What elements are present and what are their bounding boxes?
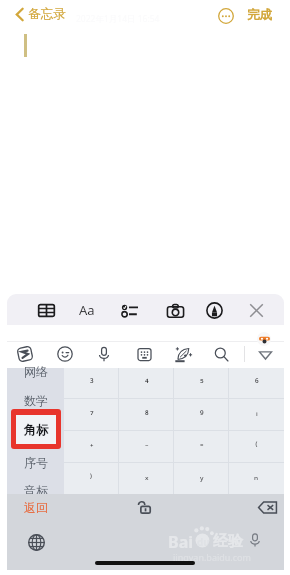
button[interactable]: Camera <box>162 298 188 322</box>
button[interactable]: Switch language <box>24 530 48 554</box>
button[interactable]: 备忘录 <box>12 3 69 25</box>
staticText: ⁴ <box>145 376 149 390</box>
button[interactable]: Backspace <box>255 495 279 519</box>
staticText: 音标 <box>24 483 48 498</box>
button[interactable]: Handwriting <box>171 342 195 366</box>
button[interactable]: 序号 <box>10 450 61 474</box>
button[interactable]: 完成 <box>244 4 275 26</box>
staticText: ⁻ <box>145 440 149 454</box>
button[interactable]: ⁶ <box>229 368 284 398</box>
button[interactable]: Keyboard layout <box>132 342 156 366</box>
staticText: 完成 <box>247 7 272 23</box>
staticText: ³ <box>90 376 94 390</box>
staticText: ⁾ <box>90 472 93 486</box>
staticText: Aa <box>79 301 95 319</box>
button[interactable]: Checklist <box>116 298 142 322</box>
staticText: 经验 <box>213 532 243 551</box>
button[interactable]: 网络 <box>10 359 61 383</box>
button[interactable]: 音标 <box>10 478 61 502</box>
staticText: ⁵ <box>200 376 204 390</box>
button[interactable]: ⁵ <box>174 368 229 398</box>
staticText: 数学 <box>24 393 48 408</box>
button[interactable]: ³ <box>64 368 119 398</box>
button[interactable]: User avatar <box>257 332 271 346</box>
button[interactable]: ʸ <box>174 463 229 494</box>
button[interactable]: ⁽ <box>229 431 284 462</box>
button[interactable]: ⁸ <box>119 399 174 430</box>
staticText: 序号 <box>24 455 48 470</box>
button[interactable]: ⁹ <box>174 399 229 430</box>
button[interactable]: Close <box>243 298 269 322</box>
button[interactable]: 角标 <box>11 409 61 449</box>
staticText: ⁶ <box>255 376 259 390</box>
button[interactable]: ˣ <box>119 463 174 494</box>
button[interactable]: Text format <box>74 298 100 322</box>
button[interactable]: ⁻ <box>119 431 174 462</box>
staticText: ˣ <box>145 472 149 486</box>
button[interactable]: Voice input <box>92 342 116 366</box>
button[interactable]: Emoji <box>53 342 77 366</box>
button[interactable]: Lock keyboard <box>132 495 156 519</box>
button[interactable]: Sogou input method <box>13 342 37 366</box>
staticText: ⁱ <box>256 408 258 422</box>
staticText: 备忘录 <box>28 6 66 22</box>
staticText: ʸ <box>200 472 204 486</box>
staticText: Bai <box>168 531 194 553</box>
button[interactable]: ⁿ <box>229 463 284 494</box>
staticText: ⁿ <box>254 472 259 486</box>
staticText: ⁷ <box>90 408 94 422</box>
staticText: 角标 <box>24 422 48 437</box>
staticText: ⁹ <box>200 408 204 422</box>
button[interactable]: 返回 <box>18 497 54 518</box>
button[interactable]: Voice input <box>245 530 265 550</box>
button[interactable]: ⁷ <box>64 399 119 430</box>
staticText: jingyan.baidu.com <box>173 551 251 563</box>
button[interactable]: ⁼ <box>174 431 229 462</box>
staticText: ⁼ <box>200 440 204 454</box>
button[interactable]: Collapse keyboard <box>253 342 277 366</box>
button[interactable]: ⁾ <box>64 463 119 494</box>
button[interactable]: ⁴ <box>119 368 174 398</box>
staticText: du <box>197 535 210 549</box>
button[interactable]: 数学 <box>10 388 61 412</box>
button[interactable]: More options <box>215 5 237 27</box>
staticText: 网络 <box>24 364 48 379</box>
button[interactable]: ⁺ <box>64 431 119 462</box>
staticText: ⁽ <box>255 440 258 454</box>
button[interactable]: Markup <box>201 298 227 322</box>
staticText: ⁺ <box>90 440 94 454</box>
staticText: ⁸ <box>145 408 149 422</box>
button[interactable]: ⁱ <box>229 399 284 430</box>
button[interactable]: Table <box>33 298 59 322</box>
staticText: 返回 <box>24 500 48 515</box>
button[interactable]: Search <box>209 342 233 366</box>
